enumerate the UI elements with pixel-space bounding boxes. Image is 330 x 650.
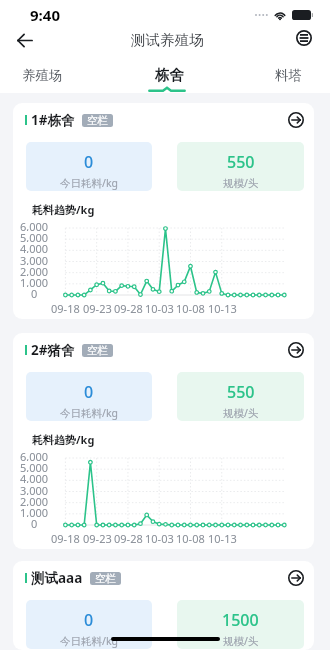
staticText: 规模/头 [223,634,259,648]
staticText: 今日耗料/kg [60,406,118,420]
staticText: 9:40 [30,5,60,25]
staticText: 4,000 [20,241,49,253]
staticText: 10-08 [176,531,205,546]
staticText: 5,000 [20,230,49,242]
button[interactable]: Open detail [286,340,306,360]
staticText: 1500 [222,609,259,631]
button[interactable]: Open detail [286,568,306,588]
button[interactable]: Open detail [286,110,306,130]
staticText: 09-23 [83,531,112,546]
staticText: 空栏 [95,572,116,585]
staticText: 规模/头 [223,176,259,190]
staticText: 料塔 [275,67,302,84]
staticText: 550 [227,381,255,403]
staticText: 3,000 [20,253,49,265]
staticText: 6,000 [20,449,49,461]
staticText: 空栏 [87,114,108,127]
staticText: 09-18 [51,531,80,546]
button[interactable]: 养殖场 [22,65,63,93]
button[interactable]: 2#猪舍 [13,333,314,549]
staticText: 2,000 [20,494,49,506]
staticText: 09-23 [83,301,112,316]
button[interactable]: 料塔 [275,65,302,93]
button[interactable]: 栋舍 [150,65,188,93]
button[interactable]: 1#栋舍 [13,103,314,319]
staticText: 养殖场 [22,67,63,84]
staticText: 0 [31,516,38,528]
staticText: 1,000 [20,505,49,517]
staticText: 4,000 [20,471,49,483]
staticText: 09-28 [114,301,143,316]
staticText: 09-18 [51,301,80,316]
staticText: 0 [31,286,38,298]
button[interactable]: 测试aaa [13,561,314,650]
staticText: 今日耗料/kg [60,176,118,190]
staticText: 规模/头 [223,406,259,420]
staticText: 10-08 [176,301,205,316]
staticText: 1#栋舍 [31,111,75,129]
staticText: 栋舍 [155,66,184,84]
staticText: 2#猪舍 [31,341,75,359]
staticText: 550 [227,151,255,173]
staticText: 0 [84,151,94,173]
staticText: 10-03 [145,301,174,316]
staticText: 3,000 [20,483,49,495]
button[interactable]: More options [291,25,317,51]
staticText: 耗料趋势/kg [32,202,95,217]
staticText: 10-13 [208,531,237,546]
staticText: 2,000 [20,264,49,276]
staticText: 09-28 [114,531,143,546]
staticText: 0 [84,609,94,631]
staticText: 10-13 [208,301,237,316]
staticText: 1,000 [20,275,49,287]
staticText: 空栏 [87,344,108,357]
staticText: 今日耗料/kg [60,634,118,648]
staticText: 测试养殖场 [131,31,204,49]
button[interactable]: Back [8,25,41,55]
staticText: 5,000 [20,460,49,472]
staticText: 测试aaa [31,569,83,587]
staticText: 耗料趋势/kg [32,432,95,447]
staticText: 6,000 [20,219,49,231]
staticText: 10-03 [145,531,174,546]
staticText: 0 [84,381,94,403]
